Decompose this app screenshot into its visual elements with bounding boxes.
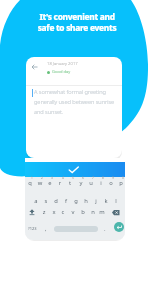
staticText: 6: [79, 176, 87, 180]
staticText: l: [112, 197, 120, 205]
staticText: x: [50, 208, 58, 216]
staticText: j: [92, 197, 100, 205]
staticText: u: [87, 179, 95, 187]
staticText: o: [107, 179, 115, 187]
staticText: 7: [89, 176, 97, 180]
staticText: f: [62, 197, 70, 205]
staticText: It's convenient and safe to share events: [3, 11, 148, 33]
staticText: r: [56, 179, 64, 187]
staticText: s: [42, 197, 50, 205]
staticText: i: [97, 179, 105, 187]
staticText: c: [59, 208, 67, 216]
staticText: .: [104, 225, 106, 233]
staticText: a: [32, 197, 40, 205]
staticText: t: [66, 179, 74, 187]
staticText: 0: [119, 176, 125, 180]
staticText: 4: [59, 176, 67, 180]
button[interactable]: [30, 62, 40, 72]
staticText: Good day: [52, 69, 71, 75]
staticText: 9: [109, 176, 117, 180]
staticText: g: [72, 197, 80, 205]
button[interactable]: [25, 162, 125, 177]
staticText: h: [82, 197, 90, 205]
staticText: d: [52, 197, 60, 205]
staticText: e: [46, 179, 54, 187]
staticText: y: [77, 179, 85, 187]
staticText: w: [36, 179, 44, 187]
staticText: ?123: [28, 226, 37, 231]
staticText: k: [102, 197, 110, 205]
button[interactable]: [114, 222, 124, 232]
staticText: 5: [69, 176, 77, 180]
staticText: m: [98, 208, 106, 216]
staticText: 18 January 2017: [47, 61, 78, 67]
staticText: 8: [99, 176, 107, 180]
staticText: ,: [45, 225, 47, 233]
staticText: A somewhat formal greeting generally use…: [34, 88, 115, 115]
staticText: 1: [28, 176, 36, 180]
staticText: p: [117, 179, 125, 187]
staticText: n: [89, 208, 97, 216]
button[interactable]: [54, 226, 98, 232]
staticText: q: [26, 179, 34, 187]
staticText: b: [79, 208, 87, 216]
staticText: z: [40, 208, 48, 216]
staticText: v: [69, 208, 77, 216]
staticText: 3: [48, 176, 56, 180]
staticText: 2: [38, 176, 46, 180]
